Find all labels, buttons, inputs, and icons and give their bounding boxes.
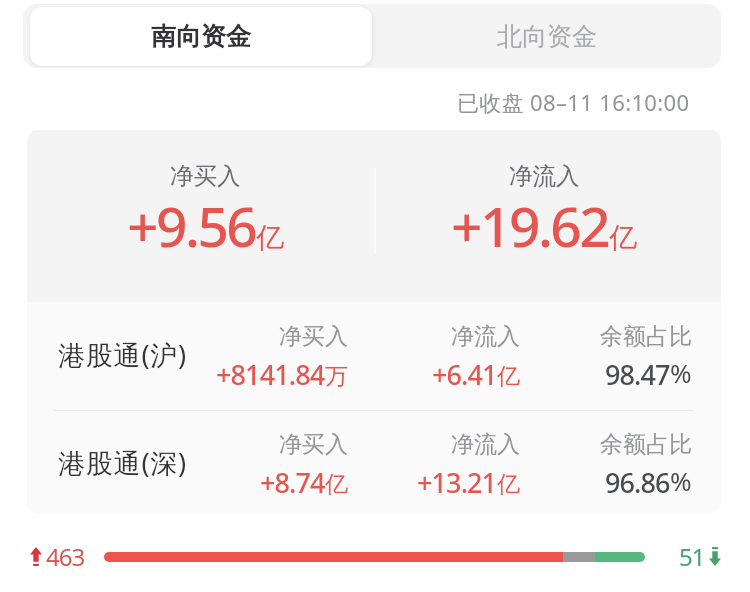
button[interactable]: 南向资金 (30, 7, 372, 66)
staticText: 96.86 (605, 464, 670, 501)
staticText: 亿 (256, 220, 284, 255)
button[interactable]: 港股通(沪) (27, 302, 721, 407)
button[interactable]: 北向资金 (372, 4, 721, 68)
staticText: +6.41 (432, 356, 497, 393)
staticText: 万 (325, 362, 348, 391)
staticText: 亿 (497, 362, 520, 391)
staticText: 净流入 (509, 161, 580, 191)
staticText: +8.74 (260, 464, 325, 501)
staticText: 亿 (325, 470, 348, 499)
staticText: 净流入 (451, 322, 520, 351)
other: Advancing stocks (30, 547, 42, 566)
staticText: 51 (679, 540, 705, 573)
staticText: 港股通(深) (58, 444, 187, 481)
button[interactable]: 净流入 (374, 130, 714, 302)
staticText: 净买入 (170, 161, 241, 191)
staticText: 余额占比 (600, 430, 692, 459)
staticText: 净买入 (279, 322, 348, 351)
button[interactable]: 港股通(深) (27, 410, 721, 513)
button[interactable]: 51 (665, 534, 735, 580)
staticText: % (670, 463, 692, 498)
staticText: +8141.84 (216, 356, 325, 393)
button[interactable]: 净买入 (35, 130, 375, 302)
staticText: 亿 (497, 470, 520, 499)
staticText: 463 (46, 540, 85, 573)
other: Declining stocks (709, 547, 721, 566)
staticText: 98.47 (605, 356, 670, 393)
staticText: 净流入 (451, 430, 520, 459)
staticText: 亿 (609, 220, 637, 255)
staticText: +9.56 (127, 188, 256, 263)
button[interactable]: Advancing stocks (20, 534, 110, 580)
staticText: 南向资金 (151, 21, 251, 52)
staticText: 北向资金 (497, 21, 597, 52)
staticText: % (670, 355, 692, 390)
staticText: 港股通(沪) (58, 336, 187, 373)
staticText: +13.21 (417, 464, 497, 501)
staticText: 余额占比 (600, 322, 692, 351)
staticText: 净买入 (279, 430, 348, 459)
staticText: +19.62 (451, 188, 609, 263)
staticText: 已收盘 08–11 16:10:00 (457, 87, 690, 117)
